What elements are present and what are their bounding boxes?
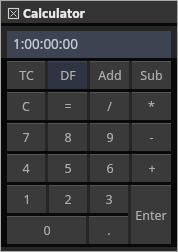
staticText: 0 <box>43 222 51 239</box>
staticText: = <box>64 98 72 115</box>
staticText: 5 <box>64 160 72 177</box>
button[interactable]: C <box>7 92 45 120</box>
staticText: 8 <box>64 129 72 146</box>
staticText: . <box>107 222 111 239</box>
staticText: 9 <box>106 129 114 146</box>
staticText: + <box>148 160 156 177</box>
staticText: 4 <box>22 160 30 177</box>
button[interactable]: 3 <box>90 185 128 213</box>
staticText: - <box>149 129 154 146</box>
staticText: 2 <box>64 191 72 208</box>
staticText: 7 <box>22 129 30 146</box>
staticText: / <box>107 98 112 115</box>
staticText: Add <box>98 67 122 84</box>
staticText: 3 <box>105 191 113 208</box>
button[interactable]: 0 <box>7 216 86 244</box>
button[interactable]: Add <box>90 61 129 89</box>
button[interactable]: 8 <box>48 123 87 151</box>
button[interactable]: 5 <box>48 154 87 182</box>
button[interactable]: 4 <box>7 154 45 182</box>
button[interactable]: 7 <box>7 123 45 151</box>
button[interactable]: 9 <box>90 123 129 151</box>
button[interactable]: = <box>48 92 87 120</box>
button[interactable]: Enter <box>131 185 171 244</box>
button[interactable]: 2 <box>49 185 87 213</box>
button[interactable]: . <box>89 216 128 244</box>
staticText: Sub <box>140 67 163 84</box>
button[interactable]: TC <box>7 61 45 89</box>
staticText: 6 <box>106 160 114 177</box>
button[interactable]: 6 <box>90 154 129 182</box>
staticText: DF <box>60 67 76 84</box>
button[interactable]: + <box>132 154 171 182</box>
staticText: 1:00:00:00 <box>13 35 78 53</box>
staticText: Calculator <box>23 7 85 21</box>
button[interactable]: * <box>132 92 171 120</box>
button[interactable]: 1 <box>7 185 46 213</box>
button[interactable]: - <box>132 123 171 151</box>
button[interactable]: Close window <box>8 8 19 19</box>
staticText: * <box>148 98 155 115</box>
staticText: TC <box>19 67 34 84</box>
staticText: Enter <box>135 207 167 224</box>
staticText: 1 <box>23 191 31 208</box>
button[interactable]: / <box>90 92 129 120</box>
button[interactable]: Sub <box>132 61 171 89</box>
button[interactable]: DF <box>48 61 87 89</box>
staticText: C <box>22 98 30 115</box>
